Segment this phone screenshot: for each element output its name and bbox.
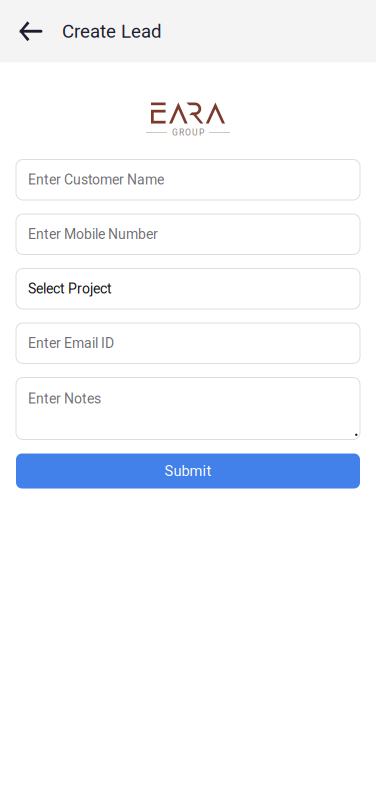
staticText: Enter Customer Name [28, 171, 164, 188]
staticText: Select Project [28, 280, 112, 297]
staticText: Enter Mobile Number [28, 226, 158, 242]
button[interactable]: Submit [16, 453, 360, 488]
staticText: Enter Notes [28, 390, 101, 407]
button[interactable]: Select Project [16, 268, 360, 309]
staticText: GROUP [172, 127, 204, 138]
staticText: Submit [164, 462, 211, 480]
button[interactable]: Back [0, 0, 62, 62]
staticText: Create Lead [62, 20, 162, 42]
staticText: Enter Email ID [28, 335, 114, 351]
